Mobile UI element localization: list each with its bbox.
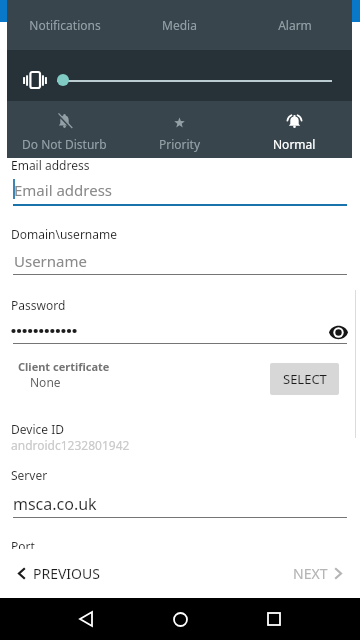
staticText: Username [14,251,87,271]
staticText: Media [162,17,197,33]
staticText: Alarm [278,17,312,33]
button[interactable]: Priority [122,101,237,158]
staticText: Password [11,297,66,313]
button[interactable]: Media [122,0,237,50]
button[interactable]: Notifications [7,0,122,50]
button[interactable]: Recent apps [254,598,294,640]
staticText: msca.co.uk [13,493,97,515]
button[interactable]: PREVIOUS [0,552,114,595]
button[interactable]: Vibrate [23,71,47,89]
staticText: Email address [11,157,90,173]
staticText: Priority [159,136,201,152]
button[interactable]: Normal [237,101,352,158]
staticText: SELECT [283,370,327,388]
staticText: androidc1232801942 [11,437,130,453]
button[interactable]: Show password [324,318,352,346]
staticText: Normal [273,136,316,152]
button[interactable]: Back [66,598,106,640]
button[interactable]: Do Not Disturb [7,101,122,158]
button[interactable]: NEXT [279,552,360,595]
staticText: PREVIOUS [33,564,100,583]
staticText: Server [11,467,48,483]
staticText: Domain\username [11,226,117,242]
staticText: NEXT [293,564,328,583]
staticText: None [30,374,61,390]
button[interactable]: Client certificate [0,359,250,390]
staticText: Do Not Disturb [22,136,107,152]
staticText: Email address [14,180,113,200]
staticText: Device ID [11,421,64,437]
staticText: Notifications [29,17,101,33]
button[interactable]: Alarm [237,0,352,50]
staticText: Client certificate [18,359,110,374]
button[interactable]: Home [160,598,200,640]
staticText: Port [11,538,35,549]
button[interactable]: SELECT [270,363,339,395]
